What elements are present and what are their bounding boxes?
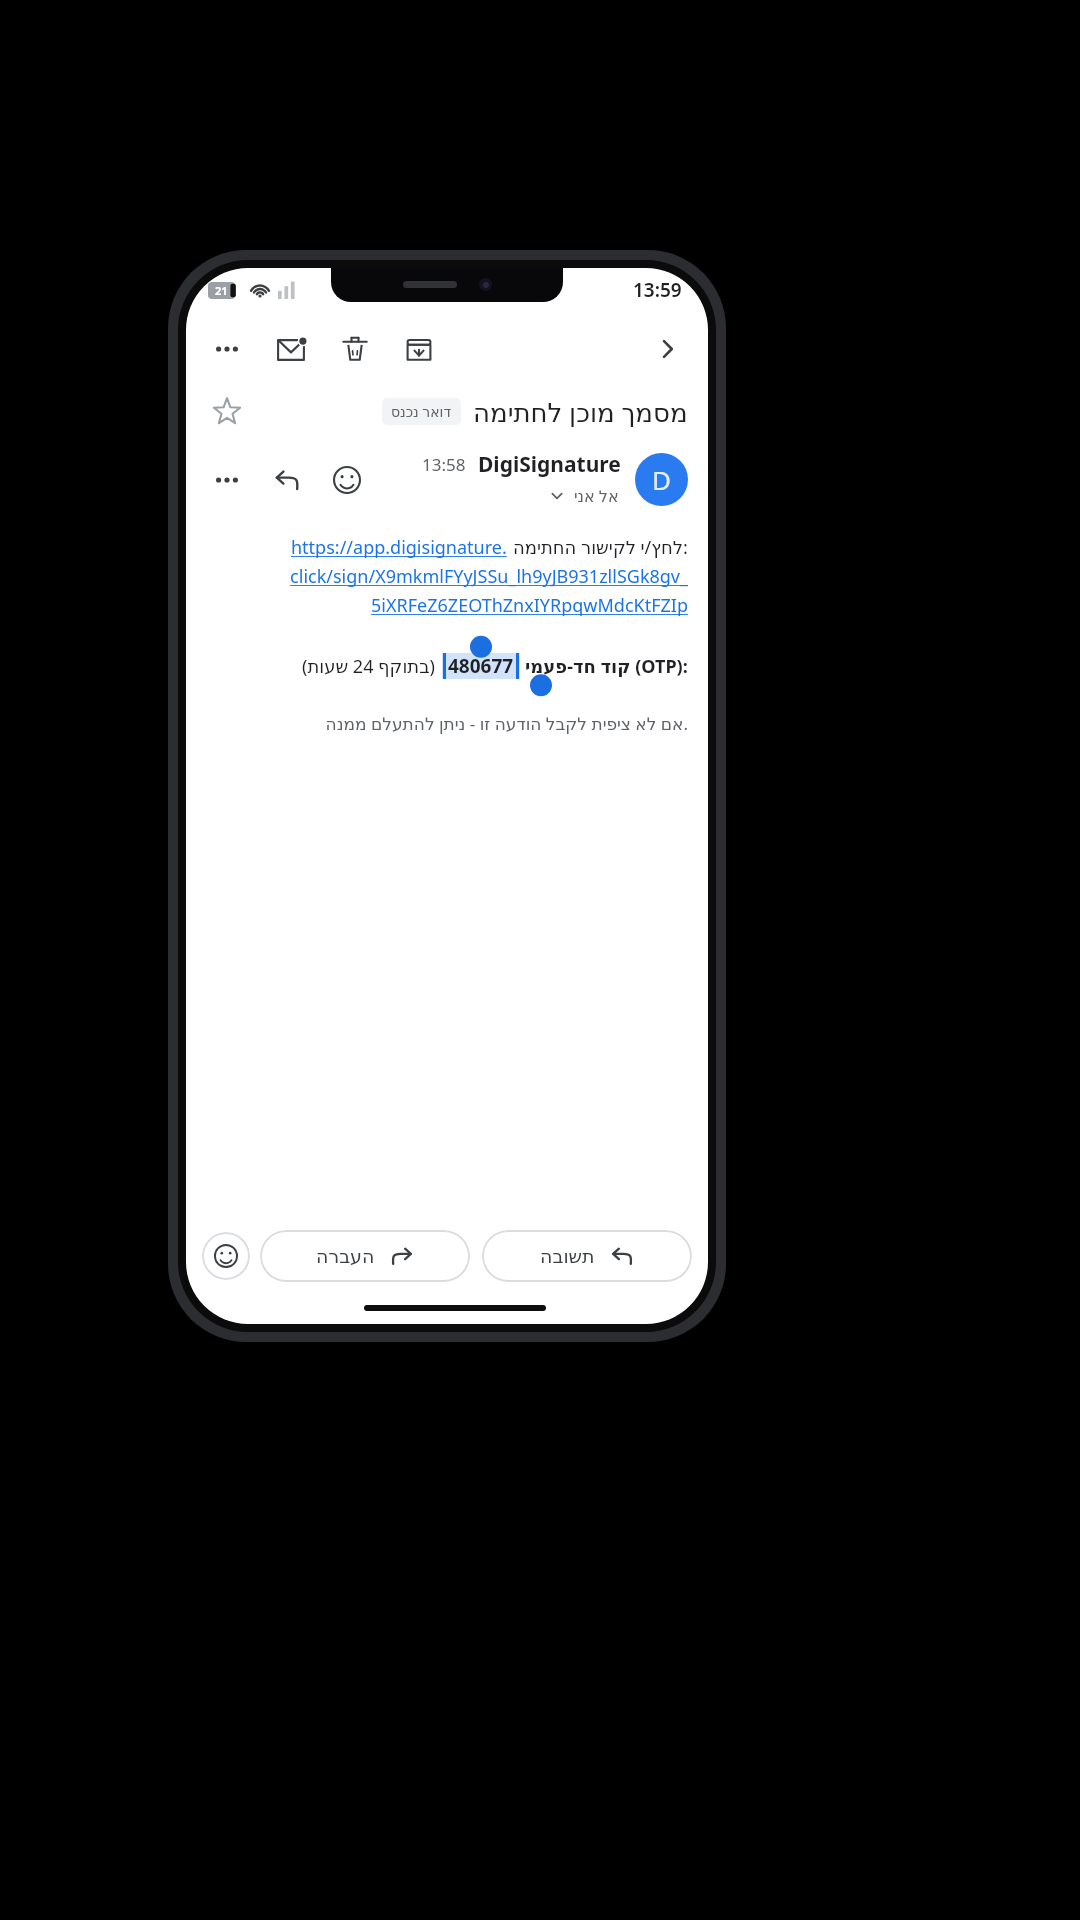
button[interactable]: Archive <box>394 324 444 374</box>
staticText: (בתוקף 24 שעות) <box>302 654 435 679</box>
button[interactable]: העברה <box>260 1230 470 1282</box>
button[interactable]: Next <box>642 324 692 374</box>
button[interactable]: More <box>202 455 252 505</box>
staticText: 480677 <box>448 653 514 679</box>
staticText: תשובה <box>540 1245 595 1267</box>
button[interactable]: Add reaction <box>202 1232 250 1280</box>
staticText: לחץ/י לקישור החתימה: <box>513 535 688 560</box>
button[interactable]: More options <box>202 324 252 374</box>
button[interactable]: https://app.digisignature. <box>291 535 507 560</box>
staticText: קוד חד-פעמי (OTP): <box>525 654 688 679</box>
button[interactable]: click/sign/X9mkmlFYyJSSu_lh9yJB931zllSGk… <box>216 564 688 589</box>
staticText: אל אני <box>574 485 619 507</box>
staticText: 13:59 <box>633 277 682 303</box>
staticText: 21 <box>215 283 228 298</box>
button[interactable]: תשובה <box>482 1230 692 1282</box>
button[interactable]: Reply <box>262 455 312 505</box>
staticText: DigiSignature <box>478 450 621 479</box>
button[interactable]: אל אני <box>546 483 621 509</box>
staticText: D <box>652 462 671 497</box>
button[interactable]: Delete <box>330 324 380 374</box>
button[interactable]: Sender avatar <box>635 453 688 506</box>
staticText: דואר נכנס <box>391 402 452 421</box>
staticText: 13:58 <box>422 453 466 476</box>
button[interactable]: Mark unread <box>266 324 316 374</box>
button[interactable]: Star <box>202 386 252 436</box>
button[interactable]: דואר נכנס <box>382 398 461 425</box>
staticText: אם לא ציפית לקבל הודעה זו - ניתן להתעלם … <box>216 712 688 735</box>
staticText: מסמך מוכן לחתימה <box>473 394 688 429</box>
staticText: העברה <box>316 1245 375 1267</box>
button[interactable]: 5iXRFeZ6ZEOThZnxIYRpqwMdcKtFZIp <box>216 593 688 618</box>
button[interactable]: Add reaction <box>322 455 372 505</box>
